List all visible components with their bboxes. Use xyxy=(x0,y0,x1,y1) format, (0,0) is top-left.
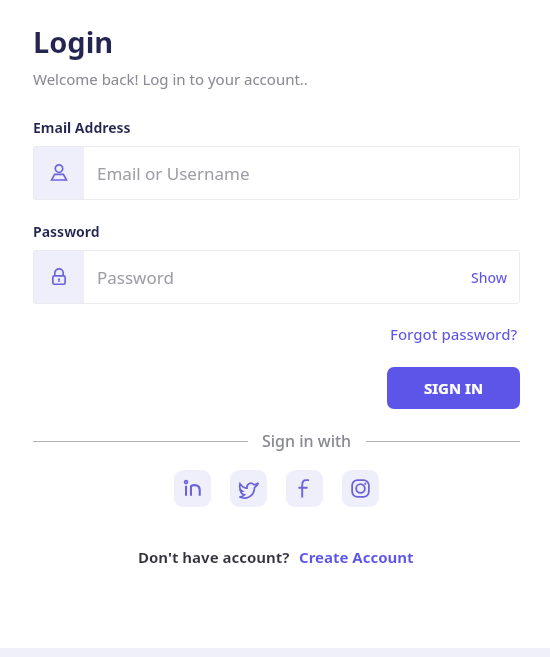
staticText: Don't have account? xyxy=(138,547,290,567)
staticText: Login xyxy=(33,22,114,61)
staticText: SIGN IN xyxy=(424,378,484,398)
staticText: Welcome back! Log in to your account.. xyxy=(33,69,308,89)
staticText: Show xyxy=(471,268,508,287)
button[interactable]: Twitter xyxy=(230,470,267,507)
staticText: Sign in with xyxy=(262,430,352,452)
button[interactable]: Facebook xyxy=(286,470,323,507)
button[interactable]: Instagram xyxy=(342,470,379,507)
staticText: Create Account xyxy=(299,547,414,567)
button[interactable]: Password xyxy=(33,250,520,304)
staticText: Forgot password? xyxy=(390,324,518,344)
staticText: Password xyxy=(33,222,100,241)
button[interactable]: SIGN IN xyxy=(387,367,520,409)
staticText: Password xyxy=(97,266,174,289)
staticText: Email or Username xyxy=(97,162,250,185)
button[interactable]: Create Account xyxy=(297,545,416,569)
button[interactable]: Forgot password? xyxy=(388,322,520,346)
button[interactable]: Show xyxy=(459,262,520,293)
staticText: Email Address xyxy=(33,118,131,137)
button[interactable]: Email or Username xyxy=(33,146,520,200)
button[interactable]: LinkedIn xyxy=(174,470,211,507)
